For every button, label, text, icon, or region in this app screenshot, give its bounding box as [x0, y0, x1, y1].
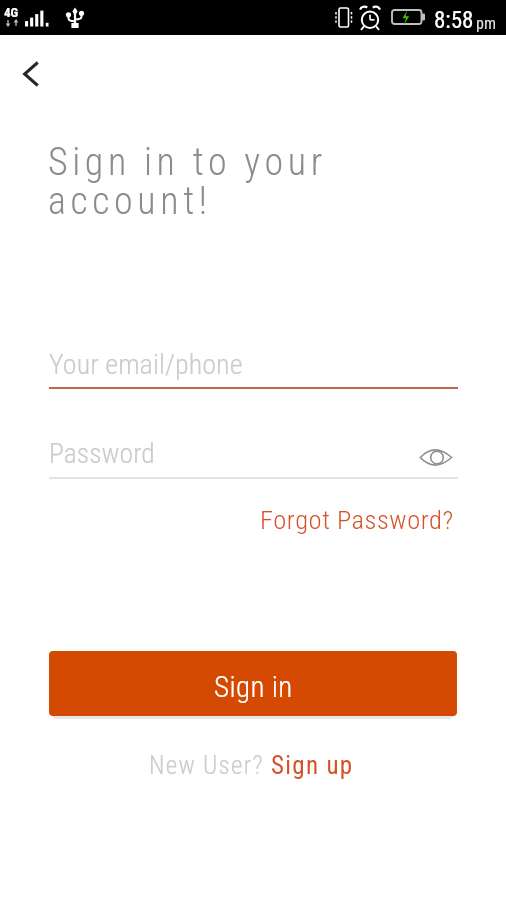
staticText: 4G: [4, 5, 19, 20]
button[interactable]: Back: [7, 50, 55, 98]
staticText: New User?: [149, 751, 271, 780]
staticText: Your email/phone: [49, 348, 243, 381]
button[interactable]: Forgot Password?: [260, 504, 454, 535]
staticText: Forgot Password?: [260, 504, 454, 535]
staticText: Password: [49, 437, 155, 469]
staticText: Sign in: [214, 670, 293, 704]
button[interactable]: Sign up: [271, 751, 354, 780]
button[interactable]: Show password: [414, 435, 458, 479]
button[interactable]: Sign in: [49, 651, 457, 716]
staticText: Sign in to your: [48, 140, 327, 185]
staticText: Sign up: [271, 751, 354, 780]
staticText: account!: [48, 179, 212, 224]
staticText: pm: [476, 14, 496, 33]
staticText: 8:58: [434, 7, 474, 34]
